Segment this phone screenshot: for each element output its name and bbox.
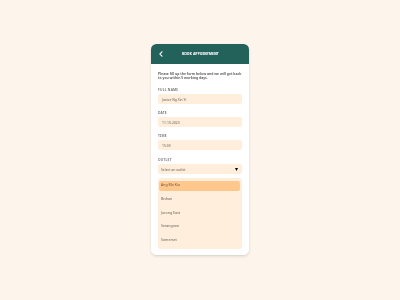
staticText: BOOK APPOINTMENT — [182, 52, 219, 56]
button[interactable]: Janice Ng Xin Yi — [158, 94, 242, 104]
staticText: 15:00 — [162, 143, 171, 148]
staticText: Janice Ng Xin Yi — [162, 97, 187, 102]
button[interactable]: 11-10-2023 — [158, 117, 242, 127]
staticText: Somerset — [161, 237, 177, 242]
staticText: Jurong East — [161, 210, 180, 215]
staticText: Please fill up the form below and we wil… — [158, 71, 242, 80]
button[interactable]: Jurong East — [159, 209, 240, 219]
staticText: DATE — [158, 110, 167, 114]
staticText: Bishan — [161, 196, 173, 201]
button[interactable]: Select an outlet — [158, 164, 242, 174]
button[interactable]: Bishan — [159, 195, 240, 205]
button[interactable]: Back — [155, 48, 167, 60]
staticText: Ang Mo Kio — [161, 182, 181, 187]
staticText: Select an outlet — [161, 167, 186, 172]
staticText: TIME — [158, 133, 167, 137]
staticText: FULL NAME — [158, 87, 179, 91]
button[interactable]: 15:00 — [158, 140, 242, 150]
staticText: Serangoon — [161, 223, 180, 228]
button[interactable]: Serangoon — [159, 222, 240, 232]
staticText: OUTLET — [158, 157, 172, 161]
staticText: 11-10-2023 — [162, 120, 180, 125]
button[interactable]: Ang Mo Kio — [159, 181, 240, 191]
button[interactable]: Somerset — [159, 236, 240, 246]
